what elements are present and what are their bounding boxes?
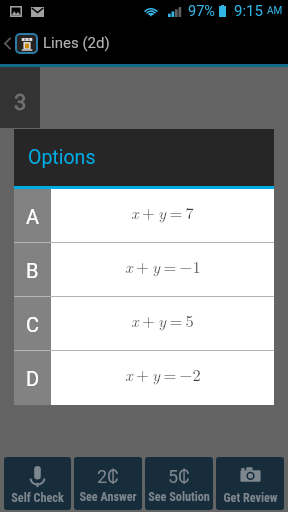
staticText: 3 bbox=[14, 90, 27, 116]
staticText: 97% bbox=[188, 3, 215, 20]
button[interactable]: C bbox=[14, 297, 274, 351]
staticText: B bbox=[26, 259, 39, 282]
staticText: Get Review bbox=[223, 491, 278, 505]
button[interactable]: D bbox=[14, 351, 274, 405]
button[interactable]: Back bbox=[0, 22, 15, 64]
staticText: See Answer bbox=[79, 490, 137, 504]
button[interactable]: Self Check bbox=[4, 457, 71, 510]
staticText: 5₵ bbox=[168, 466, 190, 486]
staticText: D bbox=[26, 367, 40, 390]
staticText: Options bbox=[28, 146, 96, 169]
staticText: 2₵ bbox=[97, 466, 119, 486]
staticText: C bbox=[26, 313, 40, 336]
staticText: AM bbox=[267, 5, 283, 17]
button[interactable]: Get Review bbox=[216, 457, 284, 510]
button[interactable]: 5₵ bbox=[145, 457, 213, 510]
button[interactable]: A bbox=[14, 189, 274, 243]
staticText: A bbox=[26, 205, 40, 228]
button[interactable]: 2₵ bbox=[74, 457, 142, 510]
button[interactable]: B bbox=[14, 243, 274, 297]
staticText: x + y = 5 bbox=[131, 308, 194, 331]
staticText: Lines (2d) bbox=[43, 34, 110, 52]
staticText: x + y = 7 bbox=[131, 200, 194, 223]
staticText: 9:15 bbox=[234, 2, 263, 20]
staticText: x + y = −2 bbox=[125, 362, 201, 385]
staticText: x + y = −1 bbox=[125, 254, 201, 277]
staticText: See Solution bbox=[148, 490, 210, 504]
staticText: Self Check bbox=[11, 491, 64, 505]
